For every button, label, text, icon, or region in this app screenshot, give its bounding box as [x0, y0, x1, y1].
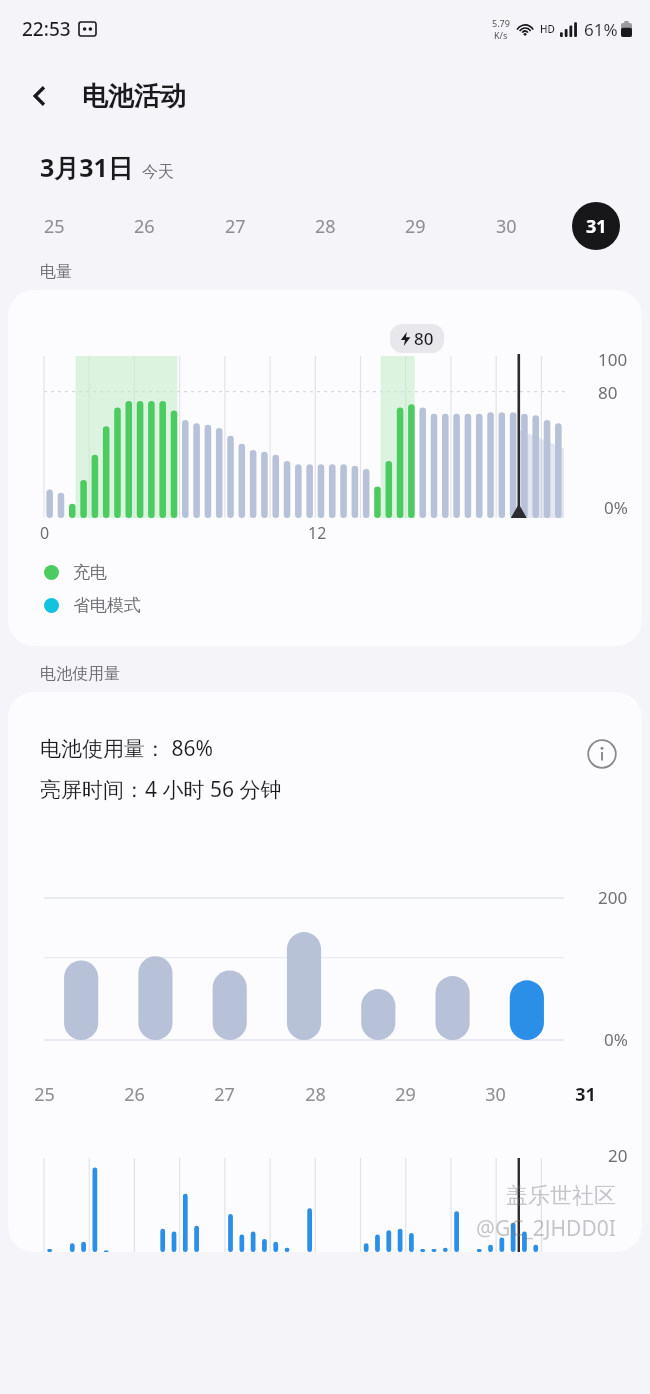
staticText: 31 — [586, 214, 607, 239]
staticText: 28 — [315, 214, 336, 239]
staticText: 27 — [225, 214, 246, 239]
staticText: 80 — [414, 327, 434, 350]
staticText: 0 — [40, 522, 50, 544]
staticText: 30 — [496, 214, 517, 239]
staticText: 0% — [604, 496, 628, 519]
staticText: 电池活动 — [82, 80, 186, 113]
staticText: 盖乐世社区 — [506, 1182, 616, 1210]
button[interactable]: 29 — [391, 202, 439, 250]
button[interactable]: Info — [584, 736, 620, 772]
staticText: 30 — [485, 1082, 506, 1107]
button[interactable]: 100 — [8, 290, 642, 646]
button[interactable]: 25 — [30, 202, 78, 250]
button[interactable]: 电池使用量： 86% — [8, 692, 642, 1252]
staticText: 0% — [604, 1028, 628, 1051]
staticText: 100 — [598, 348, 628, 371]
staticText: 29 — [395, 1082, 416, 1107]
button[interactable]: 26 — [120, 202, 168, 250]
staticText: @GC_2JHDD0I — [476, 1214, 616, 1243]
staticText: 200 — [598, 886, 628, 909]
staticText: 5.79 — [492, 17, 510, 29]
staticText: 29 — [405, 214, 426, 239]
staticText: 电量 — [40, 262, 72, 282]
staticText: 26 — [134, 214, 155, 239]
staticText: 亮屏时间：4 小时 56 分钟 — [40, 775, 282, 804]
staticText: 25 — [34, 1082, 55, 1107]
staticText: 充电 — [73, 562, 107, 583]
staticText: 12 — [308, 522, 327, 544]
staticText: 22:53 — [22, 16, 71, 42]
staticText: 27 — [214, 1082, 235, 1107]
button[interactable]: Back — [14, 70, 66, 122]
staticText: 省电模式 — [73, 595, 141, 616]
staticText: 26 — [124, 1082, 145, 1107]
staticText: K/s — [494, 29, 508, 41]
staticText: 今天 — [142, 162, 174, 182]
button[interactable]: 30 — [482, 202, 530, 250]
staticText: 61% — [584, 18, 618, 41]
button[interactable]: 31 — [572, 202, 620, 250]
staticText: 20 — [608, 1144, 628, 1167]
staticText: HD — [540, 22, 555, 36]
button[interactable]: 80 — [400, 327, 434, 350]
staticText: 80 — [598, 381, 618, 404]
button[interactable]: 28 — [301, 202, 349, 250]
button[interactable]: 27 — [211, 202, 259, 250]
staticText: 28 — [305, 1082, 326, 1107]
staticText: 31 — [575, 1082, 596, 1107]
staticText: 电池使用量： 86% — [40, 734, 213, 763]
staticText: 电池使用量 — [40, 664, 120, 684]
staticText: 3月31日 — [40, 150, 133, 184]
staticText: 25 — [44, 214, 65, 239]
